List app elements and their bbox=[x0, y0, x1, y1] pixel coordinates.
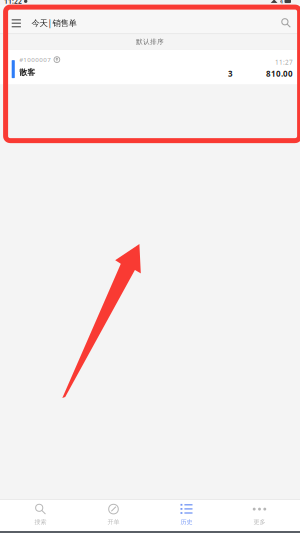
button[interactable]: #1000007 bbox=[0, 50, 300, 84]
staticText: 3 bbox=[228, 68, 233, 79]
button[interactable]: 搜索 bbox=[4, 500, 77, 531]
staticText: 散客 bbox=[19, 67, 35, 77]
button[interactable]: 默认排序 bbox=[0, 34, 300, 49]
staticText: 11:27 bbox=[275, 58, 293, 67]
staticText: 今天|销售单 bbox=[31, 17, 76, 29]
staticText: 4 bbox=[279, 0, 282, 5]
button[interactable]: Search bbox=[272, 9, 300, 37]
button[interactable]: 更多 bbox=[223, 500, 296, 531]
staticText: 更多 bbox=[253, 518, 265, 526]
staticText: 历史 bbox=[180, 518, 192, 526]
staticText: 开单 bbox=[107, 518, 119, 526]
staticText: 默认排序 bbox=[136, 37, 164, 46]
button[interactable]: 开单 bbox=[77, 500, 150, 531]
staticText: 810.00 bbox=[266, 68, 293, 79]
staticText: 11:22 bbox=[4, 0, 22, 6]
button[interactable]: 历史 bbox=[150, 500, 223, 531]
button[interactable]: Menu bbox=[0, 9, 31, 37]
staticText: #1000007 bbox=[19, 55, 51, 64]
staticText: 搜索 bbox=[34, 518, 46, 526]
